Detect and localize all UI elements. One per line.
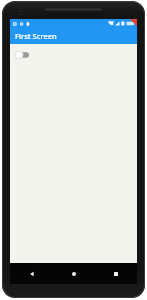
- button[interactable]: Back: [10, 263, 53, 284]
- staticText: First Screen: [15, 31, 57, 41]
- button[interactable]: Toggle: [14, 49, 34, 61]
- button[interactable]: Home: [53, 263, 95, 284]
- button[interactable]: Recent apps: [95, 263, 137, 284]
- button[interactable]: First Screen: [10, 28, 137, 44]
